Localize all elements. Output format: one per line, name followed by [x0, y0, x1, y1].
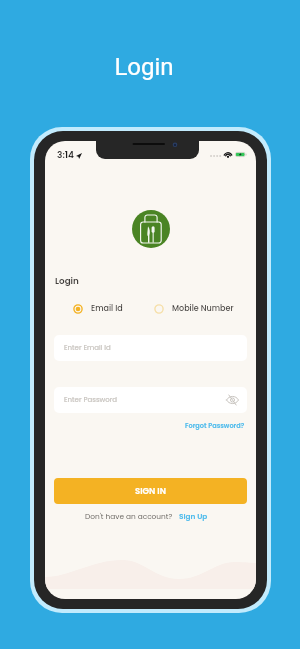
- button[interactable]: SIGN IN: [54, 478, 247, 504]
- button[interactable]: Mobile Number: [154, 303, 234, 314]
- staticText: Login: [0, 53, 294, 81]
- staticText: 3:14: [57, 149, 74, 162]
- staticText: SIGN IN: [135, 485, 166, 497]
- button[interactable]: Forgot Password?: [185, 421, 245, 430]
- staticText: Don't have an account?: [85, 511, 173, 521]
- button[interactable]: Enter Password: [54, 387, 247, 413]
- other: Show password: [226, 395, 239, 405]
- staticText: Email Id: [91, 303, 123, 314]
- button[interactable]: Sign Up: [179, 511, 208, 521]
- button[interactable]: Email Id: [73, 303, 123, 314]
- staticText: Login: [55, 275, 79, 287]
- button[interactable]: Enter Email Id: [54, 335, 247, 361]
- staticText: Enter Password: [64, 395, 118, 405]
- staticText: Enter Email Id: [64, 343, 111, 353]
- staticText: Mobile Number: [172, 303, 234, 314]
